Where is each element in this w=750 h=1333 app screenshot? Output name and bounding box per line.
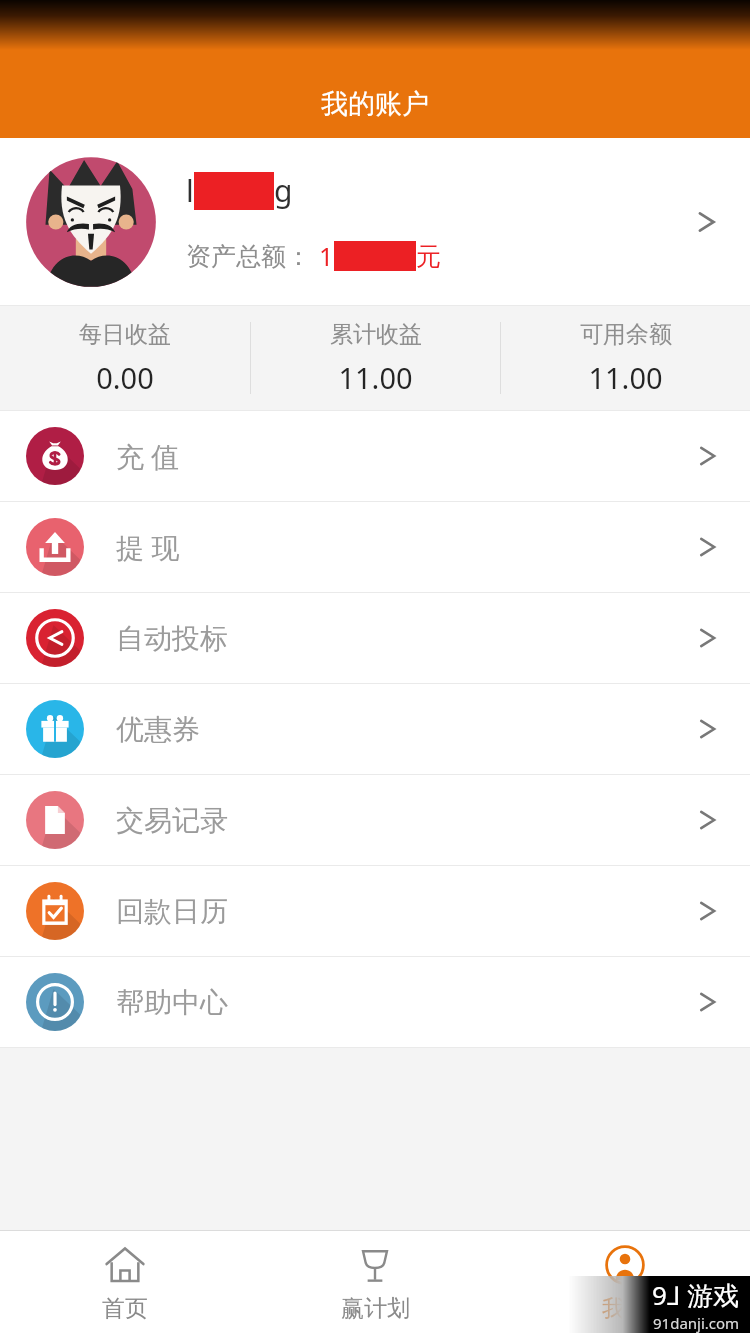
staticText: 首页: [102, 1294, 148, 1323]
staticText: 自动投标: [116, 621, 690, 656]
other: Auto bid: [690, 621, 724, 655]
button[interactable]: 优惠券: [0, 684, 750, 774]
staticText: 11.00: [338, 358, 413, 397]
button[interactable]: 回款日历: [0, 866, 750, 956]
staticText: 赢计划: [341, 1294, 410, 1323]
staticText: 91danji.com: [653, 1313, 740, 1333]
button[interactable]: 我的: [500, 1231, 750, 1333]
staticText: g: [274, 170, 293, 211]
button[interactable]: 帮助中心: [0, 957, 750, 1047]
button[interactable]: 交易记录: [0, 775, 750, 865]
staticText: 充 值: [116, 437, 690, 475]
staticText: 我的: [602, 1294, 648, 1323]
staticText: 回款日历: [116, 894, 690, 929]
other: Transaction records: [690, 803, 724, 837]
button[interactable]: l: [0, 138, 750, 305]
staticText: l: [186, 170, 194, 211]
staticText: 帮助中心: [116, 985, 690, 1020]
button[interactable]: 赢计划: [250, 1231, 500, 1333]
staticText: 9⅃ 游戏: [652, 1277, 740, 1313]
staticText: 优惠券: [116, 712, 690, 747]
staticText: 1: [319, 239, 334, 273]
button[interactable]: 首页: [0, 1231, 250, 1333]
staticText: 累计收益: [330, 320, 422, 349]
staticText: 提 现: [116, 528, 690, 566]
staticText: 每日收益: [79, 320, 171, 349]
staticText: 可用余额: [580, 320, 672, 349]
staticText: 交易记录: [116, 803, 690, 838]
button[interactable]: 充 值: [0, 411, 750, 501]
other: Withdraw: [690, 530, 724, 564]
other: Repayment calendar: [690, 894, 724, 928]
button[interactable]: 可用余额: [501, 320, 750, 397]
button[interactable]: 累计收益: [251, 320, 500, 397]
other: Account detail: [688, 204, 724, 240]
staticText: 元: [416, 241, 441, 272]
other: Coupons: [690, 712, 724, 746]
staticText: 资产总额：: [186, 241, 311, 272]
staticText: 0.00: [96, 358, 154, 397]
other: Help center: [690, 985, 724, 1019]
other: Top up: [690, 439, 724, 473]
button[interactable]: 自动投标: [0, 593, 750, 683]
button[interactable]: 提 现: [0, 502, 750, 592]
button[interactable]: 每日收益: [0, 320, 250, 397]
staticText: 我的账户: [321, 87, 429, 121]
staticText: 11.00: [588, 358, 663, 397]
